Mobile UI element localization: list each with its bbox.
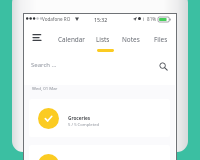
- button[interactable]: Lists: [88, 26, 116, 52]
- staticText: i: [143, 16, 145, 22]
- staticText: 81%: [147, 16, 157, 22]
- button[interactable]: Notes: [117, 26, 145, 52]
- staticText: Search ...: [31, 61, 57, 69]
- button[interactable]: Groceries: [29, 99, 170, 137]
- staticText: Groceries: [68, 115, 91, 121]
- staticText: Vodafone RO: [42, 16, 71, 22]
- staticText: 5 / 5 Completed: [68, 122, 100, 128]
- button[interactable]: Files: [146, 26, 174, 52]
- staticText: Files: [154, 35, 168, 44]
- staticText: Calendar: [58, 35, 85, 44]
- button[interactable]: Menu: [28, 28, 45, 46]
- button[interactable]: Search: [156, 59, 170, 73]
- staticText: Notes: [122, 35, 140, 44]
- button[interactable]: Calendar: [57, 26, 85, 52]
- staticText: Lists: [96, 35, 110, 44]
- staticText: 15:32: [94, 16, 108, 23]
- staticText: Wed, 01 Mar: [32, 85, 58, 91]
- button[interactable]: Work: [29, 145, 170, 160]
